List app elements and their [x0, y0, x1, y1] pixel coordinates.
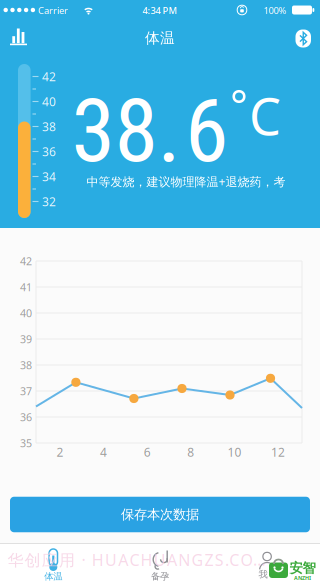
staticText: 40 — [42, 93, 56, 109]
staticText: 38 — [42, 118, 56, 134]
staticText: 4 — [100, 444, 107, 460]
staticText: 100% — [263, 4, 286, 17]
staticText: 4:34 PM — [142, 4, 177, 17]
button[interactable]: 我 — [213, 543, 320, 586]
staticText: 35 — [20, 436, 32, 450]
staticText: 36 — [42, 143, 56, 159]
staticText: 37 — [20, 384, 32, 398]
staticText: 32 — [42, 193, 56, 209]
staticText: 38. — [71, 79, 180, 182]
staticText: 12 — [271, 444, 285, 460]
staticText: 8 — [187, 444, 194, 460]
staticText: 34 — [42, 168, 56, 184]
button[interactable]: Bluetooth — [291, 27, 315, 49]
staticText: 36 — [20, 410, 32, 424]
staticText: 6 — [144, 444, 151, 460]
button[interactable]: 保存本次数据 — [10, 497, 310, 532]
staticText: 42 — [42, 68, 56, 84]
staticText: 38 — [20, 358, 32, 372]
staticText: 体温 — [44, 571, 62, 582]
staticText: 安智 — [289, 560, 315, 576]
staticText: 2 — [56, 444, 63, 460]
staticText: 40 — [20, 306, 32, 320]
staticText: 42 — [20, 254, 32, 268]
staticText: 41 — [20, 280, 32, 294]
staticText: 保存本次数据 — [121, 506, 199, 523]
staticText: 39 — [20, 332, 32, 346]
staticText: ANZHI — [294, 574, 311, 582]
button[interactable]: 体温 — [0, 543, 107, 586]
staticText: 华创应用 · HUACHUANGZS.COM — [7, 549, 269, 570]
button[interactable]: History — [0, 20, 44, 56]
staticText: Carrier — [38, 4, 68, 17]
button[interactable]: 备孕 — [107, 543, 213, 586]
staticText: 我 — [259, 569, 268, 580]
staticText: 10 — [227, 444, 241, 460]
staticText: 6 — [185, 79, 228, 182]
staticText: C — [249, 82, 281, 149]
staticText: 备孕 — [151, 571, 169, 582]
staticText: 体温 — [145, 29, 175, 47]
staticText: 中等发烧，建议物理降温+退烧药，考 — [86, 173, 285, 189]
